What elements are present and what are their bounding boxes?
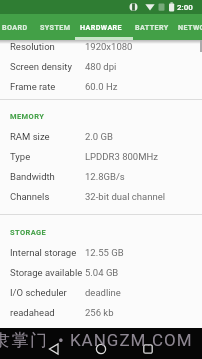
- staticText: STORAGE: [10, 228, 47, 237]
- staticText: MEMORY: [10, 112, 45, 121]
- button[interactable]: Bandwidth: [0, 166, 202, 186]
- button[interactable]: Storage available: [0, 262, 202, 282]
- button[interactable]: [0, 328, 202, 359]
- staticText: 5.04 GB: [85, 267, 119, 278]
- button[interactable]: RAM size: [0, 126, 202, 146]
- button[interactable]: Channels: [0, 186, 202, 206]
- staticText: I/O scheduler: [10, 287, 67, 298]
- button[interactable]: BATTERY: [135, 23, 169, 31]
- staticText: Storage available: [10, 267, 83, 278]
- staticText: Internal storage: [10, 247, 77, 258]
- staticText: Frame rate: [10, 81, 56, 92]
- button[interactable]: Frame rate: [0, 76, 202, 96]
- button[interactable]: Screen density: [0, 56, 202, 76]
- staticText: Screen density: [10, 61, 72, 72]
- staticText: Type: [10, 151, 31, 162]
- staticText: 12.55 GB: [85, 247, 124, 258]
- button[interactable]: Internal storage: [0, 242, 202, 262]
- button[interactable]: NETWO: [178, 23, 202, 31]
- staticText: 2.0 GB: [85, 131, 113, 142]
- staticText: LPDDR3 800MHz: [85, 151, 158, 162]
- staticText: RAM size: [10, 131, 50, 142]
- button[interactable]: BOARD: [2, 23, 28, 31]
- button[interactable]: Type: [0, 146, 202, 166]
- button[interactable]: SYSTEM: [40, 23, 71, 31]
- staticText: 隶掌门: [0, 330, 49, 351]
- staticText: 32-bit dual channel: [85, 191, 166, 202]
- staticText: 60.0 Hz: [85, 81, 118, 92]
- staticText: readahead: [10, 307, 55, 318]
- staticText: 480 dpi: [85, 61, 117, 72]
- staticText: deadline: [85, 287, 121, 298]
- button[interactable]: I/O scheduler: [0, 282, 202, 302]
- staticText: 1920x1080: [85, 41, 133, 52]
- button[interactable]: HARDWARE: [80, 23, 123, 31]
- staticText: 12.8GB/s: [85, 171, 125, 182]
- staticText: Channels: [10, 191, 50, 202]
- staticText: 2:00: [177, 3, 193, 12]
- staticText: Bandwidth: [10, 171, 55, 182]
- staticText: 256 kb: [85, 307, 114, 318]
- staticText: • KANGZM.COM: [58, 330, 193, 350]
- staticText: Resolution: [10, 41, 55, 52]
- button[interactable]: readahead: [0, 302, 202, 322]
- button[interactable]: Resolution: [0, 36, 202, 56]
